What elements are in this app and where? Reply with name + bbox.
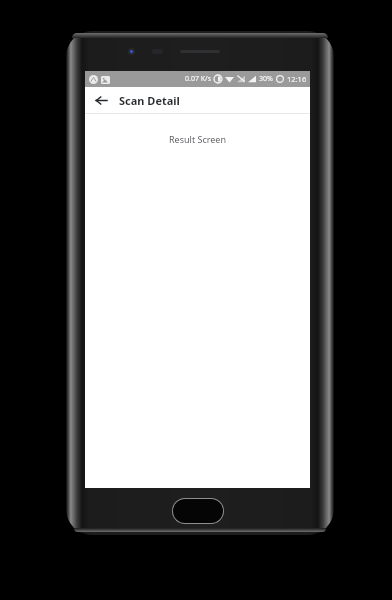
- button[interactable]: Home: [172, 498, 224, 524]
- button[interactable]: Back: [90, 89, 112, 111]
- staticText: Result Screen: [85, 133, 310, 145]
- staticText: 30%: [259, 74, 273, 84]
- staticText: Scan Detail: [119, 93, 180, 108]
- staticText: 0.07 K/s: [185, 74, 211, 84]
- staticText: 12:16: [287, 74, 307, 84]
